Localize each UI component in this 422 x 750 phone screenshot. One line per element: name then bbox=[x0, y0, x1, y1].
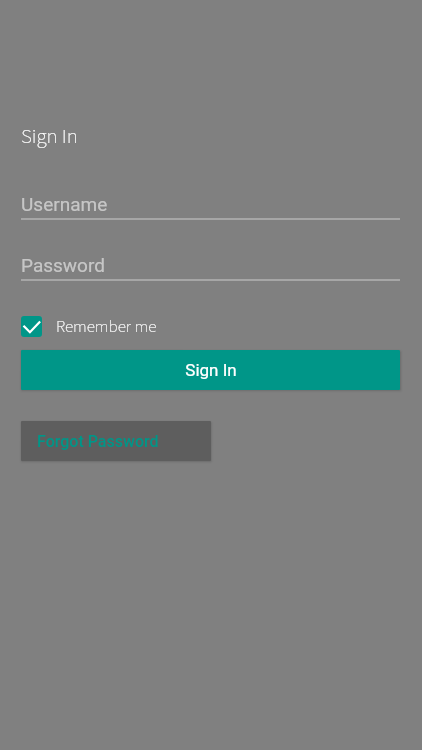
staticText: Username bbox=[21, 193, 108, 215]
staticText: Sign In bbox=[21, 121, 78, 151]
other: Remember me, checked bbox=[21, 316, 42, 337]
staticText: Remember me bbox=[56, 315, 157, 338]
button[interactable]: Username bbox=[21, 187, 400, 219]
button[interactable]: Password bbox=[21, 248, 400, 280]
staticText: Sign In bbox=[185, 360, 237, 380]
button[interactable]: Remember me, checked bbox=[21, 315, 201, 338]
staticText: Password bbox=[21, 254, 105, 276]
button[interactable]: Forgot Password bbox=[21, 421, 211, 461]
button[interactable]: Sign In bbox=[21, 350, 400, 390]
staticText: Forgot Password bbox=[37, 432, 159, 451]
